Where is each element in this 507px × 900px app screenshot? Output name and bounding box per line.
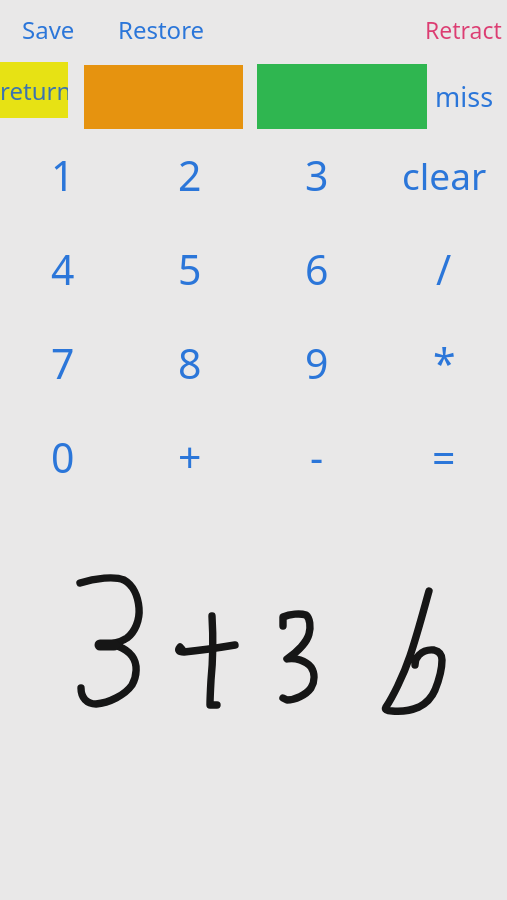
staticText: + xyxy=(178,429,202,485)
button[interactable]: 0 xyxy=(7,425,119,489)
staticText: Retract xyxy=(425,14,502,45)
button[interactable]: return xyxy=(0,62,68,118)
button[interactable]: 8 xyxy=(134,331,246,395)
staticText: 2 xyxy=(178,147,202,203)
button[interactable]: + xyxy=(134,425,246,489)
button[interactable]: * xyxy=(388,331,500,395)
staticText: - xyxy=(310,429,324,485)
staticText: * xyxy=(433,335,456,391)
button[interactable]: miss xyxy=(428,78,500,112)
staticText: / xyxy=(436,241,452,297)
staticText: return xyxy=(0,74,68,107)
button[interactable]: Restore xyxy=(115,11,207,47)
button[interactable]: 1 xyxy=(7,143,119,207)
staticText: 6 xyxy=(305,241,329,297)
button[interactable]: 7 xyxy=(7,331,119,395)
button[interactable]: Save xyxy=(18,11,78,47)
staticText: 0 xyxy=(51,429,75,485)
button[interactable]: Retract xyxy=(422,11,504,47)
staticText: miss xyxy=(435,78,494,112)
staticText: 1 xyxy=(51,147,75,203)
button[interactable]: 4 xyxy=(7,237,119,301)
button[interactable]: clear xyxy=(388,143,500,207)
button[interactable]: 3 xyxy=(261,143,373,207)
button[interactable]: 2 xyxy=(134,143,246,207)
staticText: 8 xyxy=(178,335,202,391)
staticText: Save xyxy=(22,13,75,46)
staticText: 9 xyxy=(305,335,329,391)
button[interactable]: 9 xyxy=(261,331,373,395)
staticText: 4 xyxy=(51,241,75,297)
staticText: clear xyxy=(402,150,487,200)
staticText: = xyxy=(432,429,456,485)
button[interactable]: / xyxy=(388,237,500,301)
staticText: Restore xyxy=(118,13,205,46)
staticText: 7 xyxy=(51,335,75,391)
staticText: 3 xyxy=(305,147,329,203)
staticText: 5 xyxy=(178,241,202,297)
button[interactable]: 6 xyxy=(261,237,373,301)
button[interactable]: 5 xyxy=(134,237,246,301)
button[interactable]: - xyxy=(261,425,373,489)
button[interactable]: = xyxy=(388,425,500,489)
